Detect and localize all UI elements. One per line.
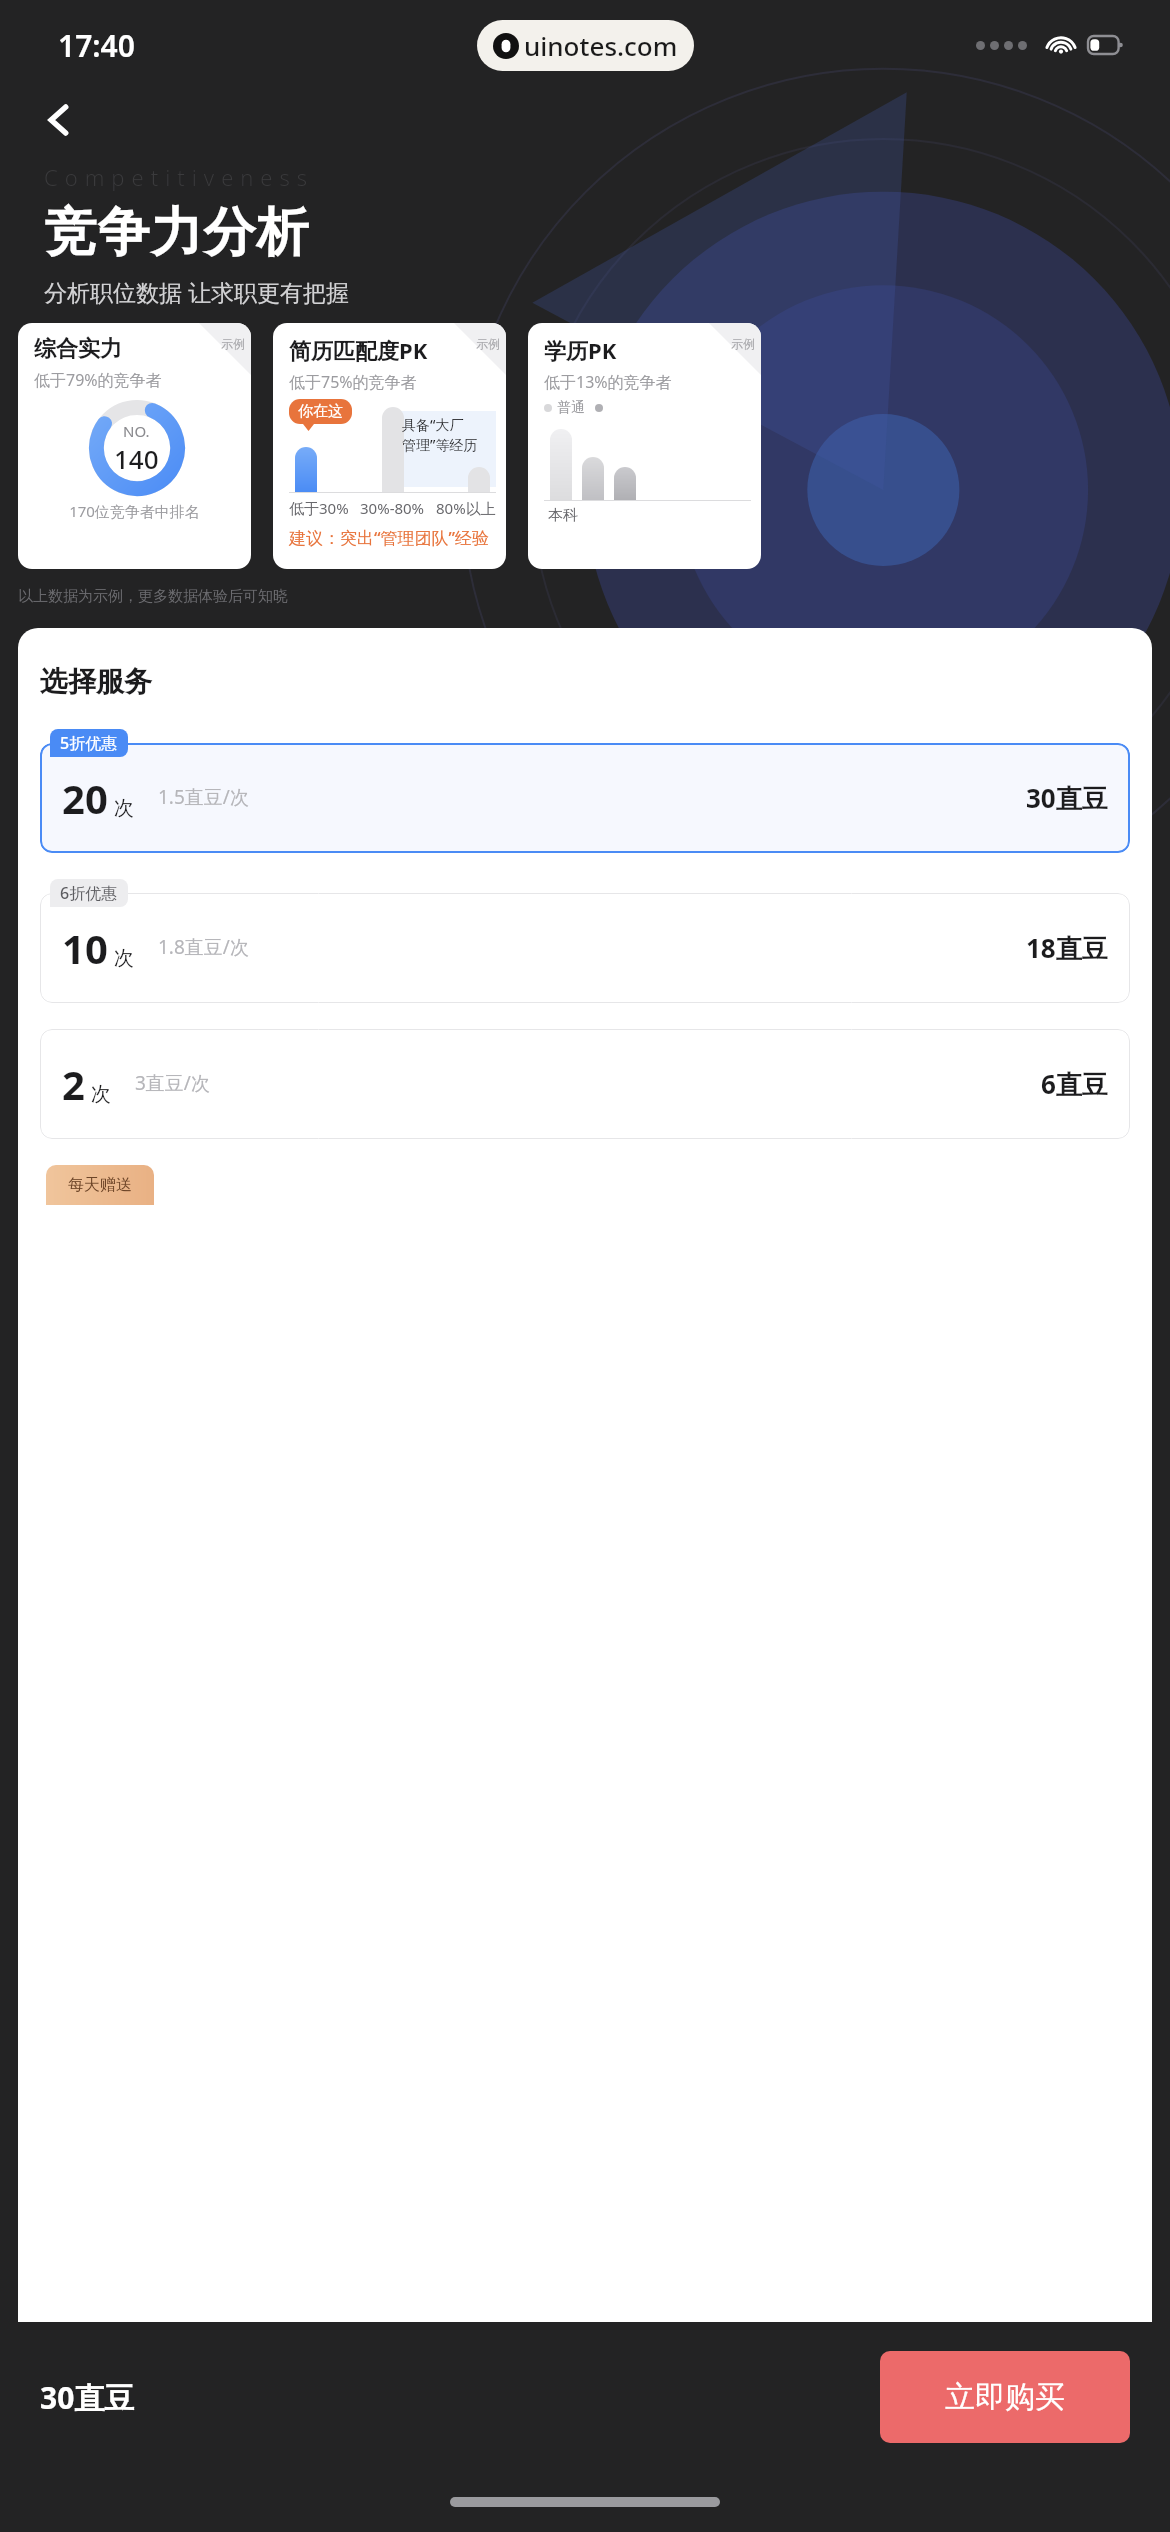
staticText: 10 — [62, 921, 108, 975]
staticText: 具备“大厂 管理”等经历 — [402, 415, 478, 454]
staticText: NO. — [123, 421, 150, 441]
staticText: 建议：突出“管理团队”经验 — [289, 526, 490, 549]
staticText: 你在这 — [298, 402, 343, 421]
button[interactable]: 学历PK — [528, 323, 761, 569]
staticText: 以上数据为示例，更多数据体验后可知晓 — [18, 587, 288, 606]
staticText: 170位竞争者中排名 — [34, 501, 235, 521]
staticText: 5折优惠 — [60, 732, 118, 754]
staticText: 每天赠送 — [68, 1175, 132, 1195]
button[interactable]: 10 — [40, 893, 1130, 1003]
staticText: 30直豆 — [40, 2377, 135, 2418]
staticText: 2 — [62, 1057, 85, 1111]
staticText: 低于79%的竞争者 — [34, 369, 162, 391]
staticText: 3直豆/次 — [135, 1070, 210, 1096]
button[interactable]: 综合实力 — [18, 323, 251, 569]
staticText: 低于13%的竞争者 — [544, 371, 672, 393]
staticText: 1.5直豆/次 — [158, 784, 249, 810]
staticText: 低于75%的竞争者 — [289, 371, 417, 393]
staticText: 竞争力分析 — [44, 200, 309, 266]
staticText: 低于30% — [289, 498, 349, 518]
staticText: 本科 — [548, 506, 578, 525]
button[interactable]: 立即购买 — [880, 2351, 1130, 2443]
staticText: 普通 — [557, 399, 585, 417]
staticText: 30%-80% — [360, 498, 425, 518]
staticText: 示例 — [221, 336, 245, 351]
staticText: 18直豆 — [1026, 930, 1108, 966]
button[interactable]: 简历匹配度PK — [273, 323, 506, 569]
staticText: 次 — [91, 1082, 111, 1107]
staticText: 17:40 — [58, 25, 135, 66]
staticText: 示例 — [476, 336, 500, 351]
staticText: 选择服务 — [40, 664, 152, 699]
staticText: 20 — [62, 771, 108, 825]
staticText: 80%以上 — [436, 498, 496, 518]
staticText: 1.8直豆/次 — [158, 934, 249, 960]
staticText: 140 — [114, 441, 159, 476]
staticText: 次 — [114, 796, 134, 821]
staticText: 30直豆 — [1026, 780, 1108, 816]
staticText: uinotes.com — [524, 28, 678, 63]
staticText: 立即购买 — [945, 2378, 1065, 2416]
button[interactable]: 2 — [40, 1029, 1130, 1139]
button[interactable]: 20 — [40, 743, 1130, 853]
button[interactable]: Back — [30, 90, 90, 150]
staticText: 简历匹配度PK — [289, 335, 428, 365]
staticText: 6直豆 — [1041, 1066, 1108, 1102]
staticText: 示例 — [731, 336, 755, 351]
staticText: 学历PK — [544, 335, 617, 365]
staticText: 6折优惠 — [60, 882, 118, 904]
staticText: 次 — [114, 946, 134, 971]
staticText: Competitiveness — [44, 162, 315, 192]
staticText: 综合实力 — [34, 335, 122, 363]
staticText: 分析职位数据 让求职更有把握 — [44, 276, 349, 307]
button[interactable]: 每天赠送 — [46, 1165, 154, 1205]
